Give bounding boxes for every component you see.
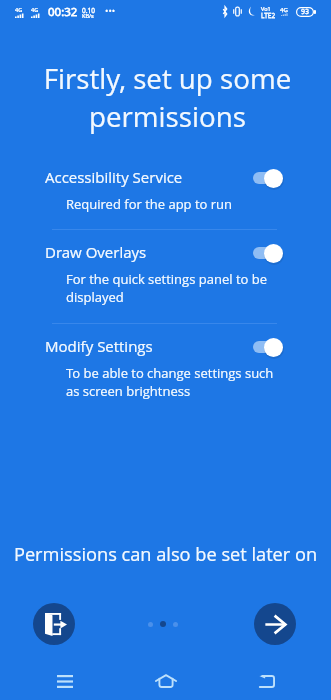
staticText: 4G: [280, 6, 288, 14]
staticText: 4G: [31, 6, 39, 13]
staticText: Firstly, set up some permissions: [2, 59, 331, 135]
staticText: Permissions can also be set later on: [0, 542, 331, 567]
button[interactable]: Next: [254, 603, 296, 645]
button[interactable]: Recent apps: [14, 659, 115, 700]
staticText: Accessibility Service: [45, 167, 183, 187]
staticText: 4G: [15, 6, 23, 13]
staticText: Modify Settings: [45, 336, 153, 356]
button[interactable]: Draw Overlays: [0, 234, 331, 330]
button[interactable]: Back: [216, 659, 317, 700]
staticText: •••: [105, 4, 116, 16]
button[interactable]: Skip permissions: [33, 603, 75, 645]
button[interactable]: Home: [115, 659, 216, 700]
button[interactable]: Accessibility Service: [0, 159, 331, 235]
staticText: 00:32: [48, 4, 78, 20]
staticText: Draw Overlays: [45, 242, 147, 262]
button[interactable]: Modify Settings: [0, 328, 331, 408]
staticText: KB/s: [82, 12, 94, 19]
staticText: Vo␵1: [261, 5, 271, 12]
staticText: For the quick settings panel to be displ…: [66, 270, 267, 306]
staticText: LTE2: [261, 11, 276, 20]
staticText: Required for the app to run: [66, 195, 233, 213]
staticText: 0.10: [82, 6, 95, 15]
staticText: To be able to change settings such as sc…: [66, 364, 274, 400]
staticText: 93: [301, 7, 310, 17]
